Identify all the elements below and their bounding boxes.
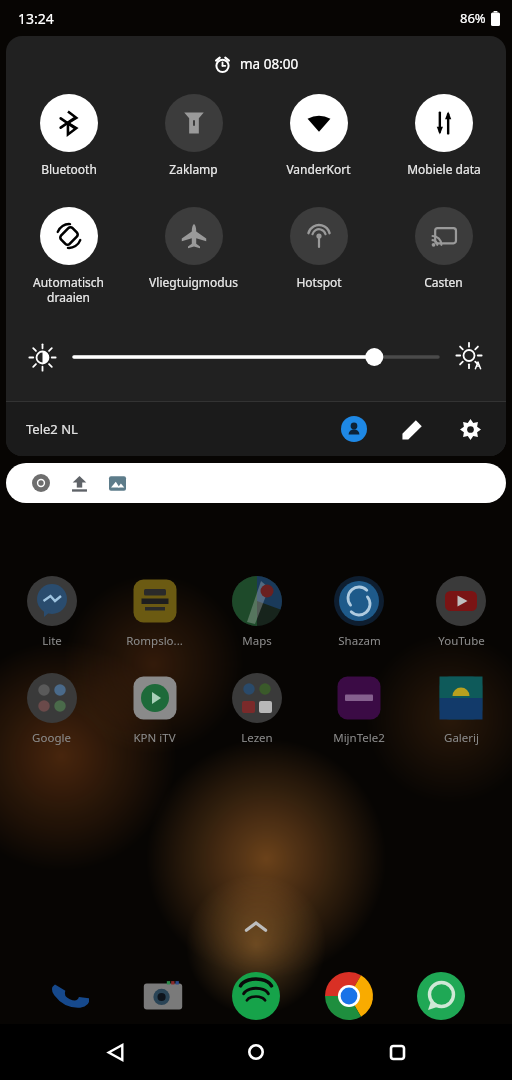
staticText: Bluetooth [41,161,97,177]
button[interactable]: Lezen [206,673,308,746]
button[interactable]: Rompslo... [103,576,206,649]
staticText: Zaklamp [169,161,218,177]
button[interactable]: Recents [371,1026,423,1078]
button[interactable]: Lower brightness [22,337,62,377]
button[interactable]: MijnTele2 [308,673,410,746]
button[interactable]: Chrome [28,470,54,496]
staticText: VanderKort [286,161,351,177]
button[interactable]: YouTube [410,576,512,649]
staticText: Hotspot [296,274,342,290]
button[interactable]: Vliegtuigmodus [131,205,256,292]
staticText: Mobiele data [407,161,481,177]
staticText: ma 08:00 [240,55,299,73]
button[interactable]: Brightness slider [74,342,438,372]
button[interactable]: Zaklamp [131,92,256,179]
button[interactable]: Share [66,470,92,496]
staticText: Maps [242,633,272,649]
staticText: Google [32,730,71,746]
button[interactable]: Lite [0,576,103,649]
staticText: Lite [42,633,62,649]
staticText: Casten [424,274,463,290]
button[interactable]: KPN iTV [103,673,206,746]
staticText: Tele2 NL [26,420,78,438]
button[interactable]: User account [332,407,376,451]
button[interactable]: Shazam [308,576,410,649]
button[interactable]: ma 08:00 [6,36,506,92]
staticText: MijnTele2 [333,730,385,746]
button[interactable]: Galerij [410,673,512,746]
button[interactable]: All apps [236,914,276,938]
staticText: Lezen [241,730,273,746]
button[interactable]: WhatsApp [413,968,469,1024]
staticText: Automatisch draaien [33,274,104,305]
staticText: Shazam [338,633,381,649]
button[interactable]: Google [0,673,103,746]
staticText: Rompslo... [126,633,183,649]
button[interactable]: Home [230,1026,282,1078]
button[interactable]: Auto brightness [450,337,490,377]
button[interactable]: Chrome [321,968,377,1024]
staticText: Vliegtuigmodus [149,274,238,290]
button[interactable]: Settings [448,407,492,451]
button[interactable]: Edit tiles [390,407,434,451]
button[interactable]: VanderKort [256,92,381,179]
button[interactable]: Mobiele data [381,92,506,179]
button[interactable]: Spotify [228,968,284,1024]
staticText: YouTube [438,633,485,649]
staticText: KPN iTV [133,730,176,746]
button[interactable]: Phone [43,968,99,1024]
button[interactable]: Maps [206,576,308,649]
button[interactable]: Camera [135,968,191,1024]
staticText: 86% [460,9,486,27]
staticText: 13:24 [18,9,54,28]
button[interactable]: Casten [381,205,506,292]
button[interactable]: Automatisch draaien [6,205,131,307]
button[interactable]: Image [104,470,130,496]
button[interactable]: Bluetooth [6,92,131,179]
button[interactable]: Back [89,1026,141,1078]
button[interactable]: Chrome [6,463,506,503]
staticText: Galerij [444,730,479,746]
button[interactable]: Hotspot [256,205,381,292]
